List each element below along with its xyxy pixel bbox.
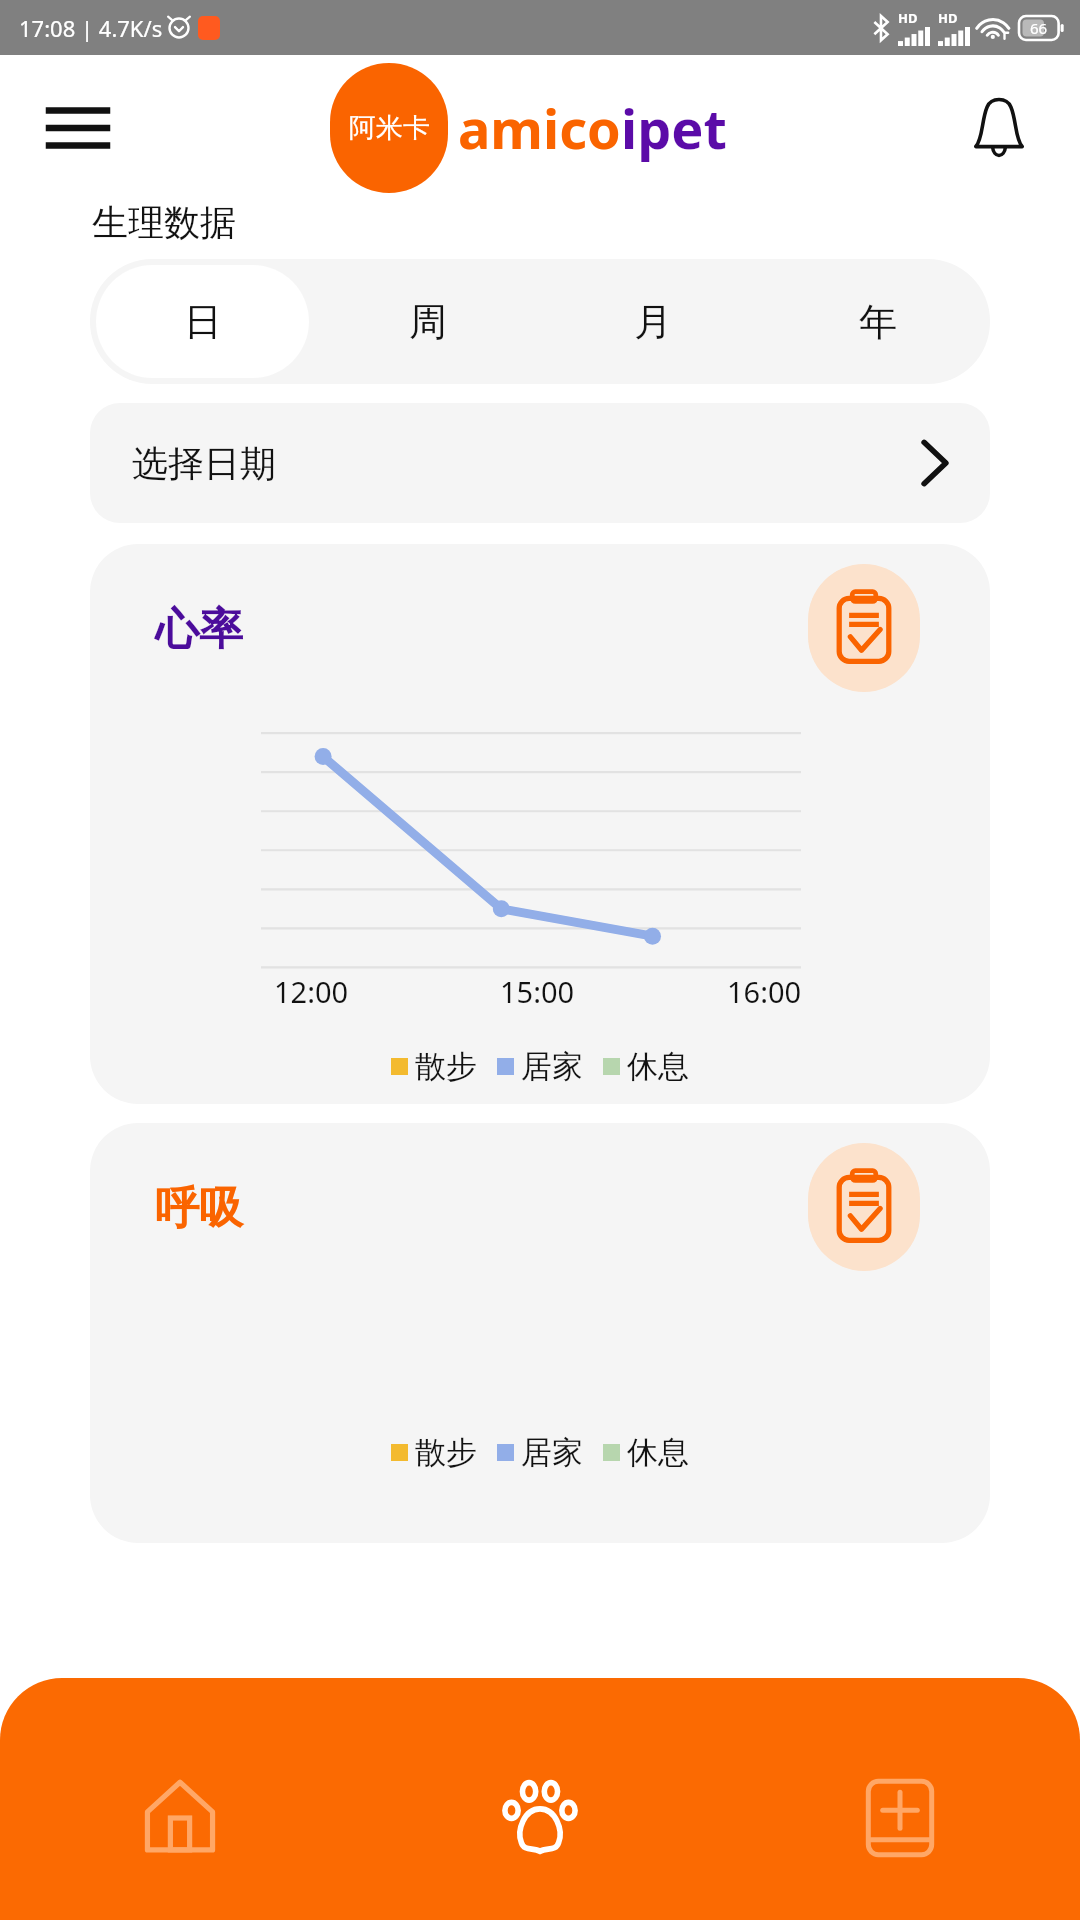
staticText: 选择日期 [132,441,276,486]
staticText: 66 [1030,18,1048,38]
button[interactable]: 年 [771,265,984,378]
button[interactable]: Menu [42,92,114,164]
staticText: 居家 [521,1433,583,1472]
staticText: 散步 [415,1433,477,1472]
button[interactable]: Home [0,1766,360,1870]
staticText: 月 [634,298,672,346]
button[interactable]: Report [808,564,920,692]
staticText: 16:00 [727,972,802,1011]
staticText: 心率 [155,602,243,657]
staticText: 周 [409,298,447,346]
button[interactable]: Report [808,1143,920,1271]
staticText: ipet [621,91,727,165]
staticText: 年 [859,298,897,346]
staticText: 散步 [415,1047,477,1086]
staticText: 休息 [627,1433,689,1472]
button[interactable]: Pets [360,1766,720,1870]
button[interactable]: 选择日期 [90,403,990,523]
staticText: 休息 [627,1047,689,1086]
button[interactable]: Add device [720,1766,1080,1870]
staticText: 阿米卡 [349,111,430,145]
staticText: amico [458,91,621,165]
staticText: HD [938,9,958,27]
button[interactable]: 日 [96,265,309,378]
staticText: 生理数据 [92,200,236,245]
button[interactable]: 月 [546,265,759,378]
staticText: 日 [184,298,222,346]
button[interactable]: 周 [321,265,534,378]
staticText: 12:00 [274,972,349,1011]
staticText: 17:08 | 4.7K/s [19,13,163,43]
staticText: 呼吸 [155,1181,243,1236]
staticText: 15:00 [500,972,575,1011]
staticText: 居家 [521,1047,583,1086]
button[interactable]: Notifications [960,89,1038,167]
staticText: HD [898,9,918,27]
